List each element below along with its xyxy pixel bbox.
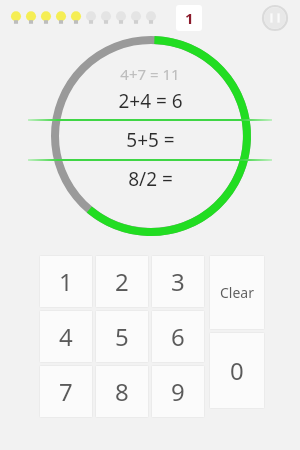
staticText: 9 [171,375,185,408]
staticText: 5 [115,320,129,353]
staticText: 8/2 = [128,166,173,192]
staticText: 8 [115,375,129,408]
staticText: 1 [59,265,73,298]
staticText: 4+7 = 11 [120,64,180,84]
button[interactable]: 1 [39,255,93,308]
staticText: 2 [115,265,129,298]
button[interactable]: 6 [151,310,205,363]
button[interactable]: 8 [95,365,149,418]
button[interactable]: 5 [95,310,149,363]
button[interactable]: 7 [39,365,93,418]
staticText: 5+5 = [126,127,175,153]
staticText: 4 [59,320,73,353]
staticText: Clear [220,283,254,302]
button[interactable]: 1 [176,5,202,31]
staticText: 1 [185,8,194,28]
staticText: 6 [171,320,185,353]
button[interactable]: 4 [39,310,93,363]
staticText: 0 [230,354,244,387]
staticText: 3 [171,265,185,298]
staticText: 2+4 = 6 [118,88,183,114]
button[interactable]: Clear [209,255,265,330]
button[interactable]: Pause [262,5,288,31]
button[interactable]: 0 [209,332,265,409]
button[interactable]: 2 [95,255,149,308]
button[interactable]: 3 [151,255,205,308]
button[interactable]: 9 [151,365,205,418]
staticText: 7 [59,375,73,408]
